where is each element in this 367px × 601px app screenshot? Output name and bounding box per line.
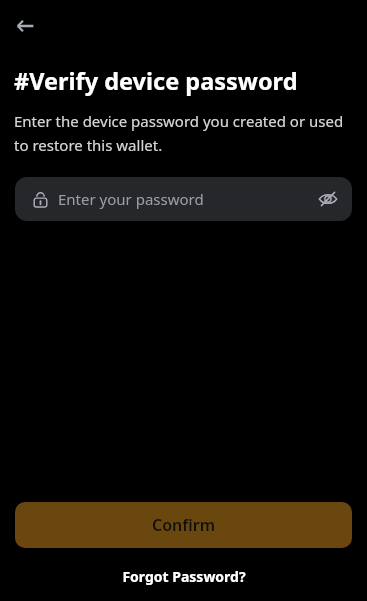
staticText: Confirm (152, 514, 216, 536)
staticText: Forgot Password? (122, 567, 246, 586)
button[interactable]: Confirm (15, 502, 352, 548)
staticText: Enter the device password you created or… (14, 111, 351, 155)
button[interactable]: Show password (308, 179, 348, 219)
button[interactable]: Forgot Password? (112, 564, 256, 589)
button[interactable]: Back (8, 9, 42, 43)
staticText: Enter your password (58, 189, 204, 209)
staticText: #Verify device password (14, 65, 298, 97)
button[interactable]: Enter your password (15, 177, 352, 221)
